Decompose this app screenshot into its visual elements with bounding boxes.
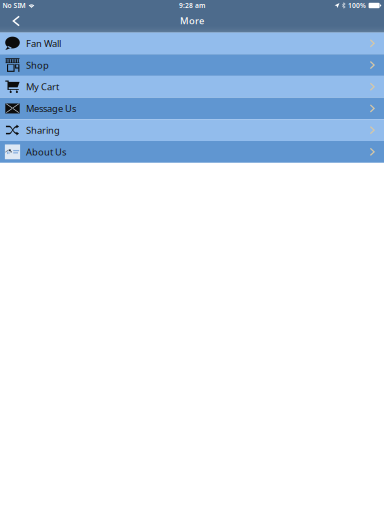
- button[interactable]: My Cart: [0, 76, 384, 98]
- staticText: 9:28 am: [179, 1, 205, 10]
- staticText: Shop: [26, 59, 49, 71]
- button[interactable]: Sharing: [0, 119, 384, 141]
- staticText: 100%: [348, 1, 366, 10]
- staticText: More: [180, 15, 204, 27]
- staticText: My Cart: [26, 81, 59, 93]
- staticText: Fan Wall: [26, 37, 61, 50]
- staticText: About Us: [26, 146, 66, 158]
- button[interactable]: Fan Wall: [0, 32, 384, 54]
- button[interactable]: About Us: [0, 141, 384, 163]
- button[interactable]: Back: [0, 11, 32, 27]
- button[interactable]: Shop: [0, 54, 384, 76]
- staticText: Message Us: [26, 102, 76, 115]
- staticText: No SIM: [2, 1, 25, 10]
- staticText: Sharing: [26, 124, 60, 136]
- button[interactable]: Message Us: [0, 98, 384, 119]
